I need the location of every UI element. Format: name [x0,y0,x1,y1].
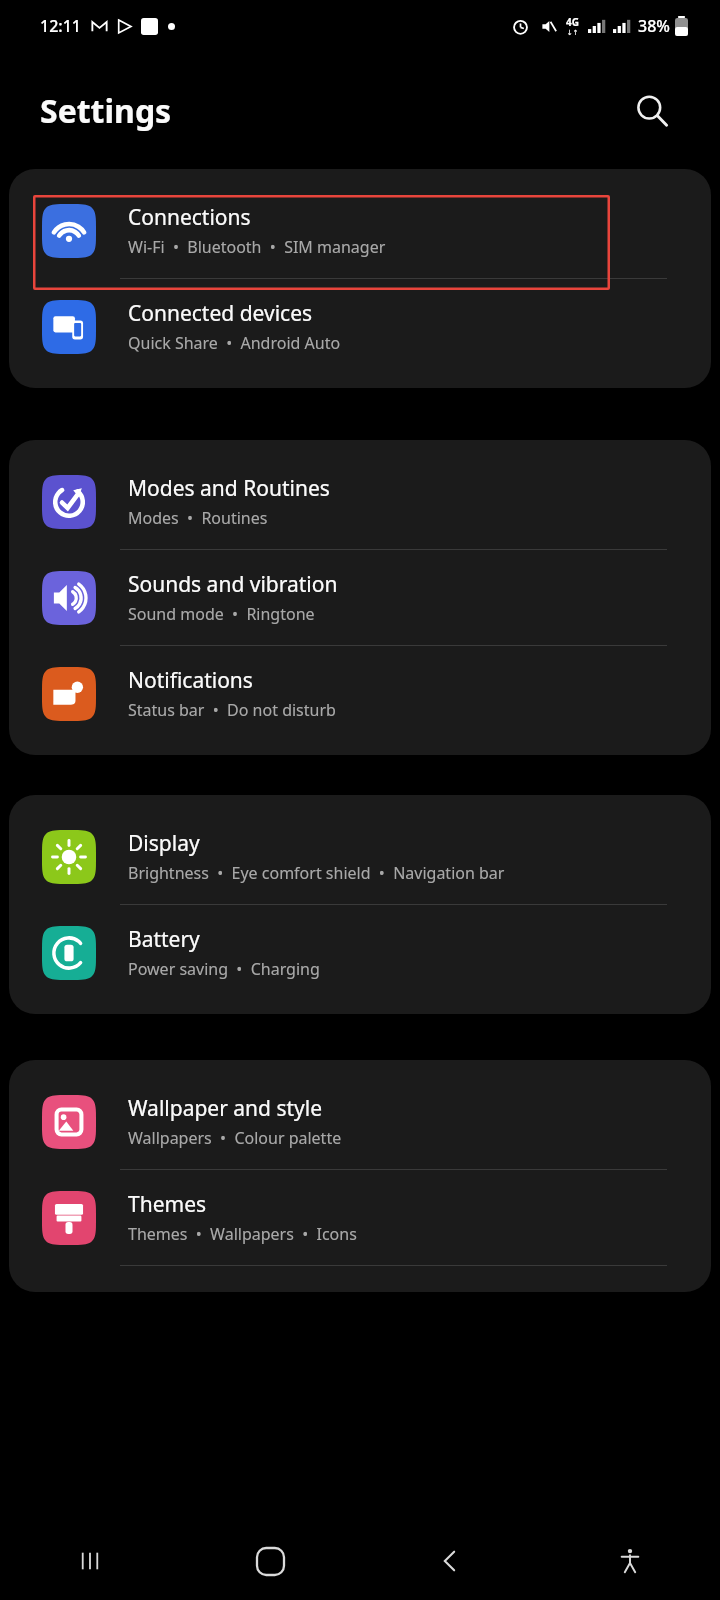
staticText: Status bar • Do not disturb [128,699,336,721]
staticText: 4G [566,15,579,29]
button[interactable]: Accessibility [540,1522,720,1600]
button[interactable]: Sounds and vibration [9,550,711,645]
button[interactable]: Modes and Routines [9,454,711,549]
staticText: 38% [638,15,670,37]
button[interactable]: Notifications [9,646,711,741]
staticText: Connections [128,203,251,232]
staticText: Wallpapers • Colour palette [128,1127,342,1149]
button[interactable]: Wallpaper and style [9,1074,711,1169]
staticText: Wallpaper and style [128,1094,323,1123]
staticText: Brightness • Eye comfort shield • Naviga… [128,862,505,884]
button[interactable]: Battery [9,905,711,1000]
staticText: Themes [128,1190,207,1219]
staticText: Notifications [128,666,253,695]
staticText: Sound mode • Ringtone [128,603,315,625]
staticText: Battery [128,925,200,954]
button[interactable]: Recents [0,1522,180,1600]
staticText: Power saving • Charging [128,958,320,980]
staticText: Connected devices [128,299,313,328]
staticText: Wi-Fi • Bluetooth • SIM manager [128,236,386,258]
staticText: Modes and Routines [128,474,330,503]
button[interactable]: Connected devices [9,279,711,374]
button[interactable]: Connections [9,183,711,278]
staticText: Quick Share • Android Auto [128,332,341,354]
button[interactable]: Display [9,809,711,904]
button[interactable]: Search [628,87,676,135]
staticText: 12:11 [40,15,81,37]
staticText: ↓↑ [567,29,579,37]
staticText: Themes • Wallpapers • Icons [128,1223,357,1245]
button[interactable]: Themes [9,1170,711,1265]
staticText: Sounds and vibration [128,570,338,599]
staticText: Settings [40,89,172,133]
button[interactable]: Home [180,1522,360,1600]
staticText: Modes • Routines [128,507,268,529]
button[interactable]: Back [360,1522,540,1600]
staticText: Display [128,829,200,858]
